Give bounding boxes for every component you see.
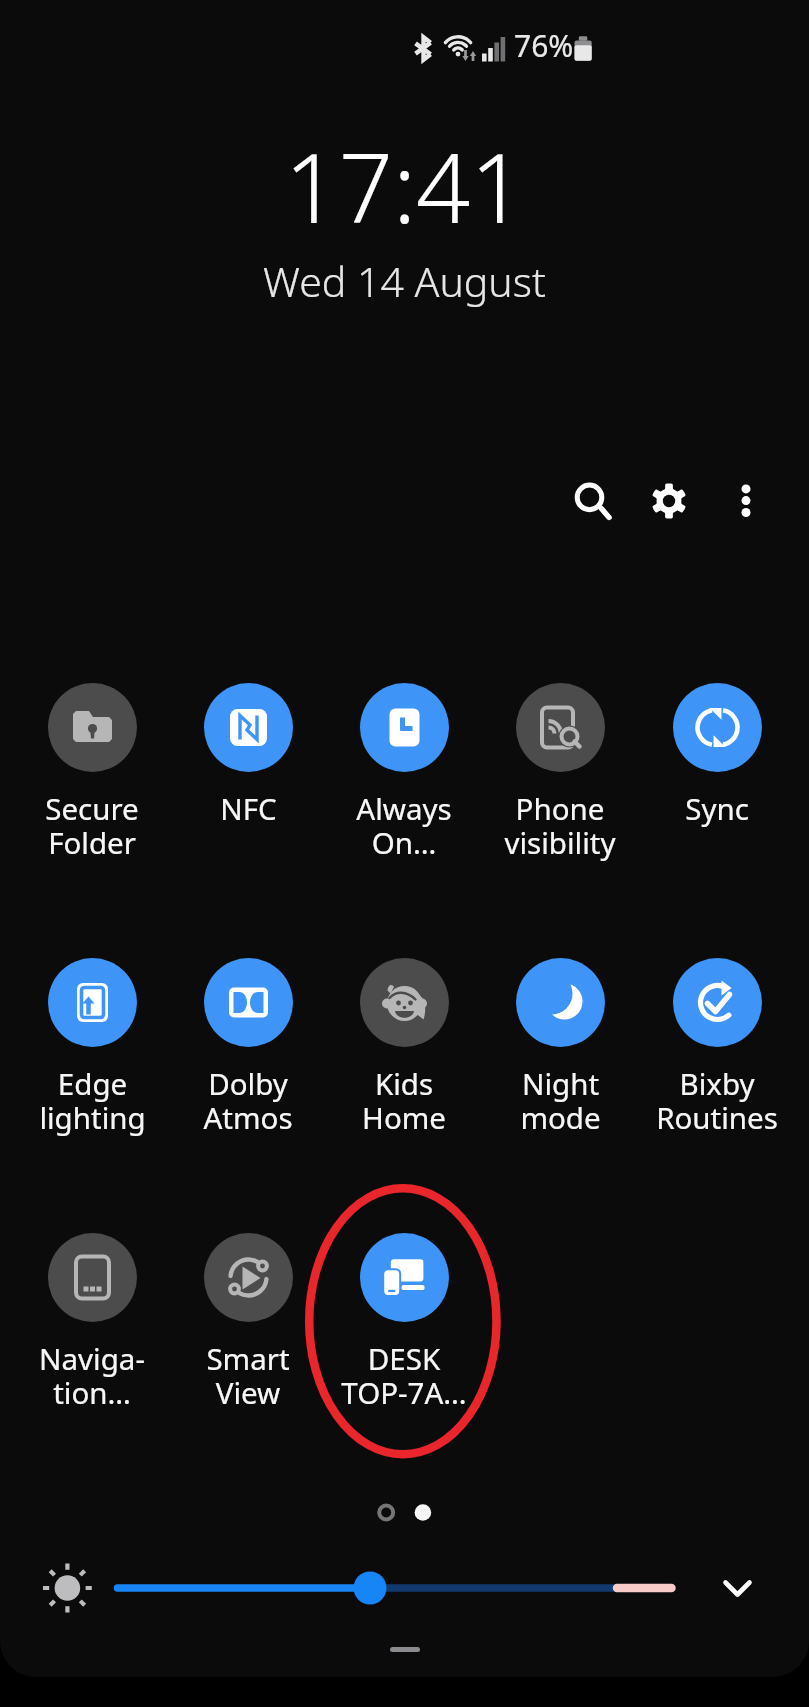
button[interactable]: Sync [639, 683, 795, 828]
button[interactable]: Dolby Atmos [170, 958, 326, 1138]
button[interactable]: Phone visibility [482, 683, 638, 863]
staticText: Secure Folder [45, 788, 139, 863]
staticText: Kids Home [362, 1063, 446, 1138]
button[interactable]: Smart View [170, 1233, 326, 1413]
button[interactable]: Kids Home [326, 958, 482, 1138]
staticText: Dolby Atmos [203, 1063, 293, 1138]
button[interactable]: Bixby Routines [639, 958, 795, 1138]
button[interactable]: Search [554, 462, 630, 538]
button[interactable]: Auto brightness [37, 1558, 98, 1619]
staticText: Phone visibility [504, 788, 616, 863]
button[interactable]: Edge lighting [14, 958, 170, 1138]
button[interactable]: Night mode [482, 958, 638, 1138]
staticText: NFC [220, 788, 277, 828]
button[interactable]: Always On… [326, 683, 482, 863]
staticText: Sync [685, 788, 749, 828]
button[interactable]: DESK TOP-7A… [326, 1233, 482, 1413]
button[interactable]: More options [708, 462, 784, 538]
staticText: Naviga- tion… [39, 1338, 145, 1413]
staticText: Bixby Routines [656, 1063, 778, 1138]
staticText: 76% [514, 25, 574, 66]
button[interactable]: Collapse panel [390, 1647, 420, 1652]
button[interactable]: Naviga- tion… [14, 1233, 170, 1413]
staticText: Night mode [520, 1063, 601, 1138]
staticText: DESK TOP-7A… [341, 1338, 467, 1413]
staticText: 17:41 [284, 121, 525, 250]
staticText: Smart View [206, 1338, 290, 1413]
button[interactable]: Settings [631, 462, 707, 538]
button[interactable]: Secure Folder [14, 683, 170, 863]
button[interactable]: NFC [170, 683, 326, 828]
staticText: Wed 14 August [263, 253, 546, 309]
button[interactable]: Expand brightness settings [707, 1558, 768, 1619]
staticText: Edge lighting [39, 1063, 146, 1138]
staticText: Always On… [356, 788, 452, 863]
button[interactable]: Brightness [100, 1564, 689, 1612]
